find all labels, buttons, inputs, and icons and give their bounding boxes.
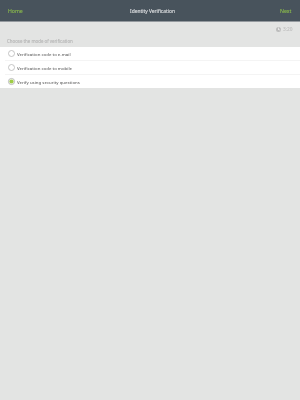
- button[interactable]: Verify using security questions: [0, 74, 300, 88]
- button[interactable]: Next: [272, 0, 300, 22]
- staticText: Identity Verification: [130, 8, 175, 15]
- staticText: 3:20: [283, 26, 293, 33]
- staticText: Choose the mode of verification: [7, 38, 73, 44]
- staticText: Home: [8, 7, 23, 14]
- button[interactable]: Verification code to mobile: [0, 60, 300, 74]
- button[interactable]: Verification code to e-mail: [0, 47, 300, 60]
- staticText: Next: [280, 7, 292, 14]
- staticText: Verify using security questions: [17, 79, 80, 85]
- staticText: Verification code to mobile: [17, 65, 73, 71]
- staticText: Verification code to e-mail: [17, 51, 71, 57]
- button[interactable]: Session time remaining: [275, 25, 294, 34]
- button[interactable]: Home: [0, 0, 31, 22]
- other: Session time remaining: [276, 27, 281, 32]
